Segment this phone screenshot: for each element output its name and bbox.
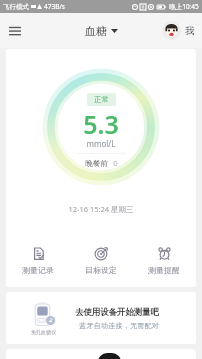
- staticText: 12-16 15:24 星期三: [68, 204, 134, 214]
- staticText: 免扎血糖仪: [31, 329, 56, 335]
- button[interactable]: 目标设定: [77, 245, 125, 277]
- button[interactable]: 测量提醒: [140, 245, 188, 277]
- staticText: 晚上10:45: [169, 2, 199, 11]
- staticText: 飞行模式: [3, 3, 29, 11]
- staticText: 测量提醒: [148, 265, 180, 275]
- staticText: 测量记录: [22, 265, 54, 275]
- staticText: 晚餐前: [85, 159, 108, 168]
- button[interactable]: 血糖: [79, 20, 124, 42]
- staticText: 去使用设备开始测量吧: [75, 307, 159, 318]
- staticText: 5.3: [83, 107, 119, 141]
- staticText: 473B/s: [44, 2, 65, 11]
- staticText: 蓝牙自动连接，无需配对: [79, 321, 159, 330]
- button[interactable]: 测量记录: [14, 245, 62, 277]
- button[interactable]: 我: [162, 21, 195, 40]
- button[interactable]: Menu: [3, 19, 27, 43]
- staticText: 正常: [94, 95, 109, 104]
- staticText: 目标设定: [85, 265, 117, 275]
- staticText: 血糖: [85, 24, 107, 38]
- staticText: 我: [185, 25, 195, 37]
- staticText: mmol/L: [86, 138, 116, 149]
- staticText: 0: [113, 158, 118, 168]
- button[interactable]: 免扎血糖仪: [6, 292, 196, 344]
